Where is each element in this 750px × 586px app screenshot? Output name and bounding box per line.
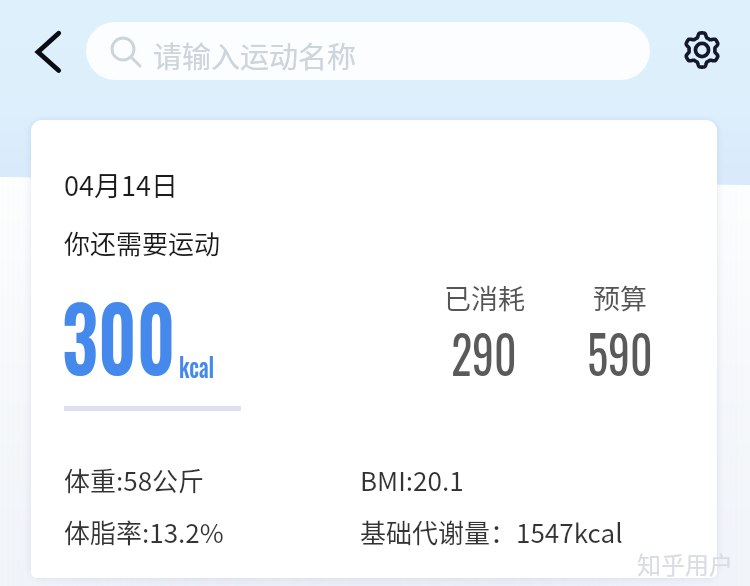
staticText: 你还需要运动: [64, 224, 221, 262]
staticText: 04月14日: [64, 165, 178, 204]
staticText: 请输入运动名称: [153, 34, 357, 76]
staticText: BMI:20.1: [360, 461, 464, 499]
button[interactable]: Back: [22, 22, 78, 78]
staticText: 300: [62, 269, 176, 401]
staticText: 基础代谢量：1547kcal: [360, 513, 623, 551]
staticText: 体脂率:13.2%: [64, 513, 224, 551]
staticText: kcal: [179, 346, 214, 386]
button[interactable]: 请输入运动名称: [86, 22, 650, 80]
staticText: 知乎用户: [637, 546, 733, 581]
staticText: 体重:58公斤: [64, 461, 205, 499]
staticText: 预算: [593, 278, 647, 317]
button[interactable]: Settings: [678, 26, 726, 74]
staticText: 290: [451, 314, 517, 391]
staticText: 590: [587, 314, 653, 391]
staticText: 已消耗: [444, 278, 525, 317]
